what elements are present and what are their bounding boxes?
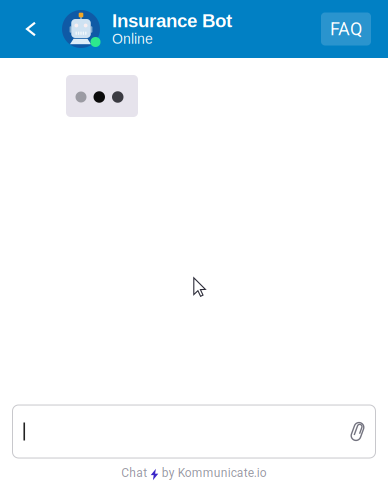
staticText: Online (112, 31, 153, 47)
staticText: FAQ (330, 18, 362, 40)
staticText: Chat (121, 466, 147, 480)
button[interactable]: FAQ (321, 12, 371, 45)
staticText: Insurance Bot (112, 10, 232, 31)
staticText: by Kommunicate.io (162, 466, 267, 480)
button[interactable]: Back (0, 0, 62, 58)
button[interactable]: Attach file (339, 405, 375, 458)
